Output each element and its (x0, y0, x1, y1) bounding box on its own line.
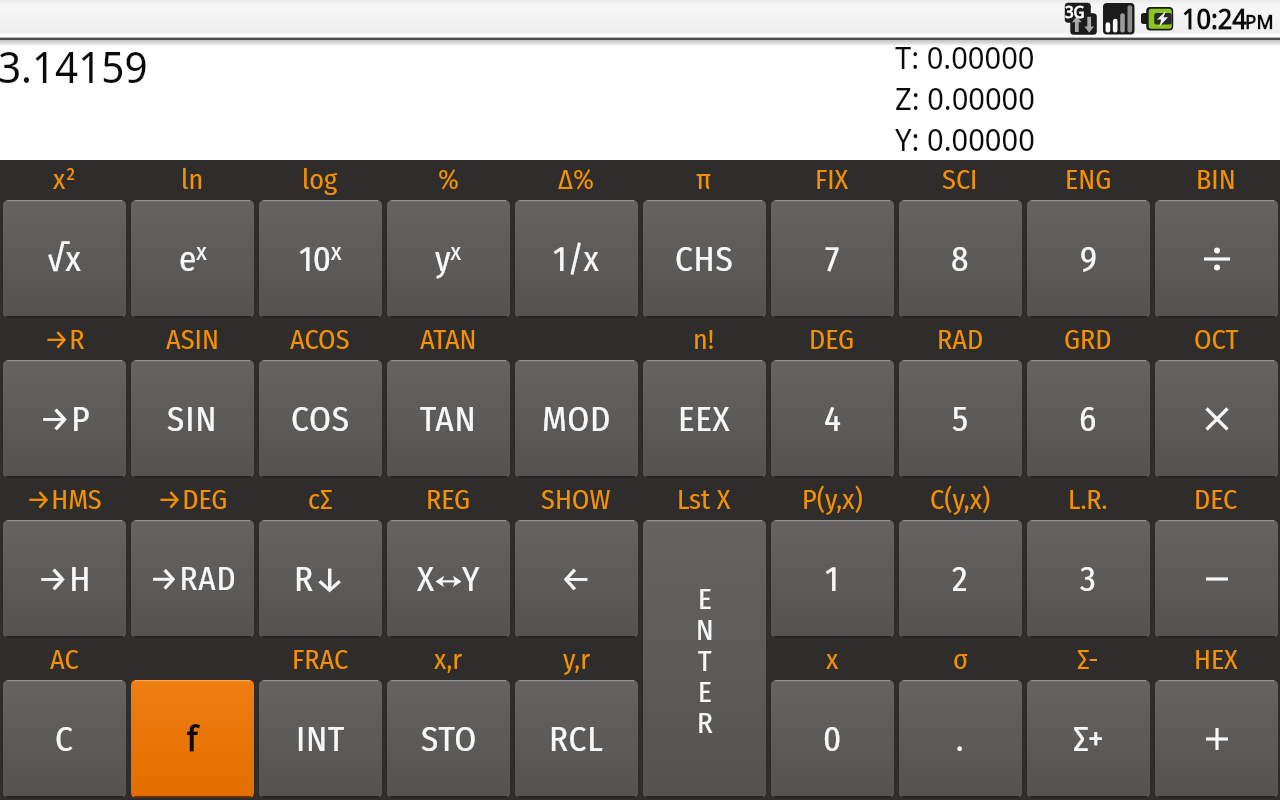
staticText: ASIN (166, 323, 219, 357)
staticText: 1/x (553, 238, 600, 280)
button[interactable]: COS (259, 360, 382, 478)
button[interactable]: 0 (771, 680, 894, 798)
staticText: √x (47, 238, 82, 280)
button[interactable]: 7 (771, 200, 894, 318)
button[interactable]: e (131, 200, 254, 318)
staticText: x (826, 643, 839, 677)
staticText: f (187, 718, 199, 760)
staticText: FIX (815, 163, 849, 197)
staticText: RCL (549, 718, 604, 760)
staticText: ← (560, 558, 593, 600)
button[interactable]: ENTER (643, 520, 766, 798)
button[interactable]: R↓ (259, 520, 382, 638)
staticText: E (698, 582, 712, 613)
button[interactable]: EEX (643, 360, 766, 478)
staticText: 5 (952, 398, 969, 440)
staticText: σ (953, 643, 968, 677)
staticText: SIN (167, 398, 218, 440)
staticText: STO (421, 718, 477, 760)
staticText: →P (39, 398, 91, 440)
button[interactable]: 3 (1027, 520, 1150, 638)
button[interactable]: + (1155, 680, 1278, 798)
staticText: Σ- (1077, 643, 1099, 677)
button[interactable]: 6 (1027, 360, 1150, 478)
button[interactable]: × (1155, 360, 1278, 478)
button[interactable]: 4 (771, 360, 894, 478)
staticText: log (302, 163, 338, 197)
button[interactable]: CHS (643, 200, 766, 318)
staticText: 4 (824, 398, 842, 440)
staticText: HEX (1194, 643, 1238, 677)
staticText: SCI (942, 163, 978, 197)
staticText: →R (44, 323, 85, 357)
staticText: Y (462, 558, 480, 600)
button[interactable]: 5 (899, 360, 1022, 478)
staticText: ACOS (290, 323, 350, 357)
staticText: R↓ (294, 558, 347, 600)
staticText: PM (1245, 8, 1274, 35)
button[interactable]: 10 (259, 200, 382, 318)
staticText: T: 0.00000 (895, 36, 1035, 77)
button[interactable]: f (131, 680, 254, 798)
staticText: R (697, 706, 713, 737)
button[interactable]: SIN (131, 360, 254, 478)
staticText: % (438, 163, 459, 197)
button[interactable]: →H (3, 520, 126, 638)
button[interactable]: 9 (1027, 200, 1150, 318)
button[interactable]: RCL (515, 680, 638, 798)
staticText: Δ% (558, 163, 594, 197)
staticText: GRD (1064, 323, 1112, 357)
staticText: 8 (951, 238, 970, 280)
staticText: BIN (1196, 163, 1236, 197)
button[interactable]: →RAD (131, 520, 254, 638)
staticText: ln (181, 163, 204, 197)
staticText: TAN (420, 398, 477, 440)
staticText: y,r (563, 643, 590, 677)
button[interactable]: 1/x (515, 200, 638, 318)
staticText: EEX (678, 398, 731, 440)
button[interactable]: 1 (771, 520, 894, 638)
staticText: n! (693, 323, 715, 357)
button[interactable]: 8 (899, 200, 1022, 318)
staticText: 7 (825, 238, 840, 280)
staticText: 10x (299, 238, 342, 281)
staticText: Z: 0.00000 (895, 77, 1035, 118)
other: 3G data (1064, 2, 1098, 36)
staticText: 3.14159 (0, 37, 148, 96)
staticText: DEG (809, 323, 855, 357)
button[interactable]: √x (3, 200, 126, 318)
button[interactable]: STO (387, 680, 510, 798)
staticText: 3G (1065, 1, 1085, 23)
staticText: cΣ (308, 483, 333, 517)
staticText: REG (426, 483, 471, 517)
staticText: ex (179, 238, 207, 281)
button[interactable]: - (1155, 520, 1278, 638)
button[interactable]: ← (515, 520, 638, 638)
staticText: yx (435, 238, 462, 281)
staticText: P(y,x) (802, 483, 863, 517)
staticText: C(y,x) (930, 483, 991, 517)
staticText: 1 (825, 558, 840, 600)
button[interactable]: Σ+ (1027, 680, 1150, 798)
button[interactable]: TAN (387, 360, 510, 478)
staticText: Lst X (677, 483, 731, 517)
other: Battery charging (1141, 6, 1175, 32)
staticText: E (698, 675, 712, 706)
button[interactable]: MOD (515, 360, 638, 478)
button[interactable]: ÷ (1155, 200, 1278, 318)
staticText: 2 (952, 558, 969, 600)
staticText: →HMS (26, 483, 102, 517)
button[interactable]: y (387, 200, 510, 318)
staticText: RAD (937, 323, 984, 357)
button[interactable]: . (899, 680, 1022, 798)
staticText: OCT (1194, 323, 1239, 357)
staticText: T (698, 644, 712, 675)
button[interactable]: INT (259, 680, 382, 798)
button[interactable]: X↔Y (387, 520, 510, 638)
staticText: INT (296, 718, 346, 760)
staticText: X (417, 558, 435, 600)
button[interactable]: →P (3, 360, 126, 478)
button[interactable]: C (3, 680, 126, 798)
staticText: →RAD (149, 559, 237, 599)
button[interactable]: 2 (899, 520, 1022, 638)
